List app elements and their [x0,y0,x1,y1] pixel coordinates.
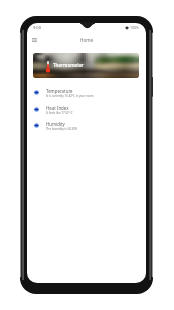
staticText: It is currently 16.82°C in your room [46,94,94,98]
button[interactable]: Temperature [27,88,146,104]
staticText: The humidity is 54.30% [46,127,78,131]
staticText: It feels like 17.52 °C [46,111,73,115]
button[interactable]: Heat Index [27,105,146,121]
staticText: Humidity [46,121,65,127]
button[interactable]: Thermometer [33,53,139,78]
staticText: Heat Index [46,105,69,111]
staticText: 9:00 [33,25,41,30]
button[interactable]: Menu [28,34,40,46]
staticText: Temperature [46,88,73,94]
button[interactable]: Humidity [27,121,146,137]
staticText: Thermometer [53,62,84,68]
staticText: Home [80,37,94,43]
staticText: 100% [130,25,139,30]
